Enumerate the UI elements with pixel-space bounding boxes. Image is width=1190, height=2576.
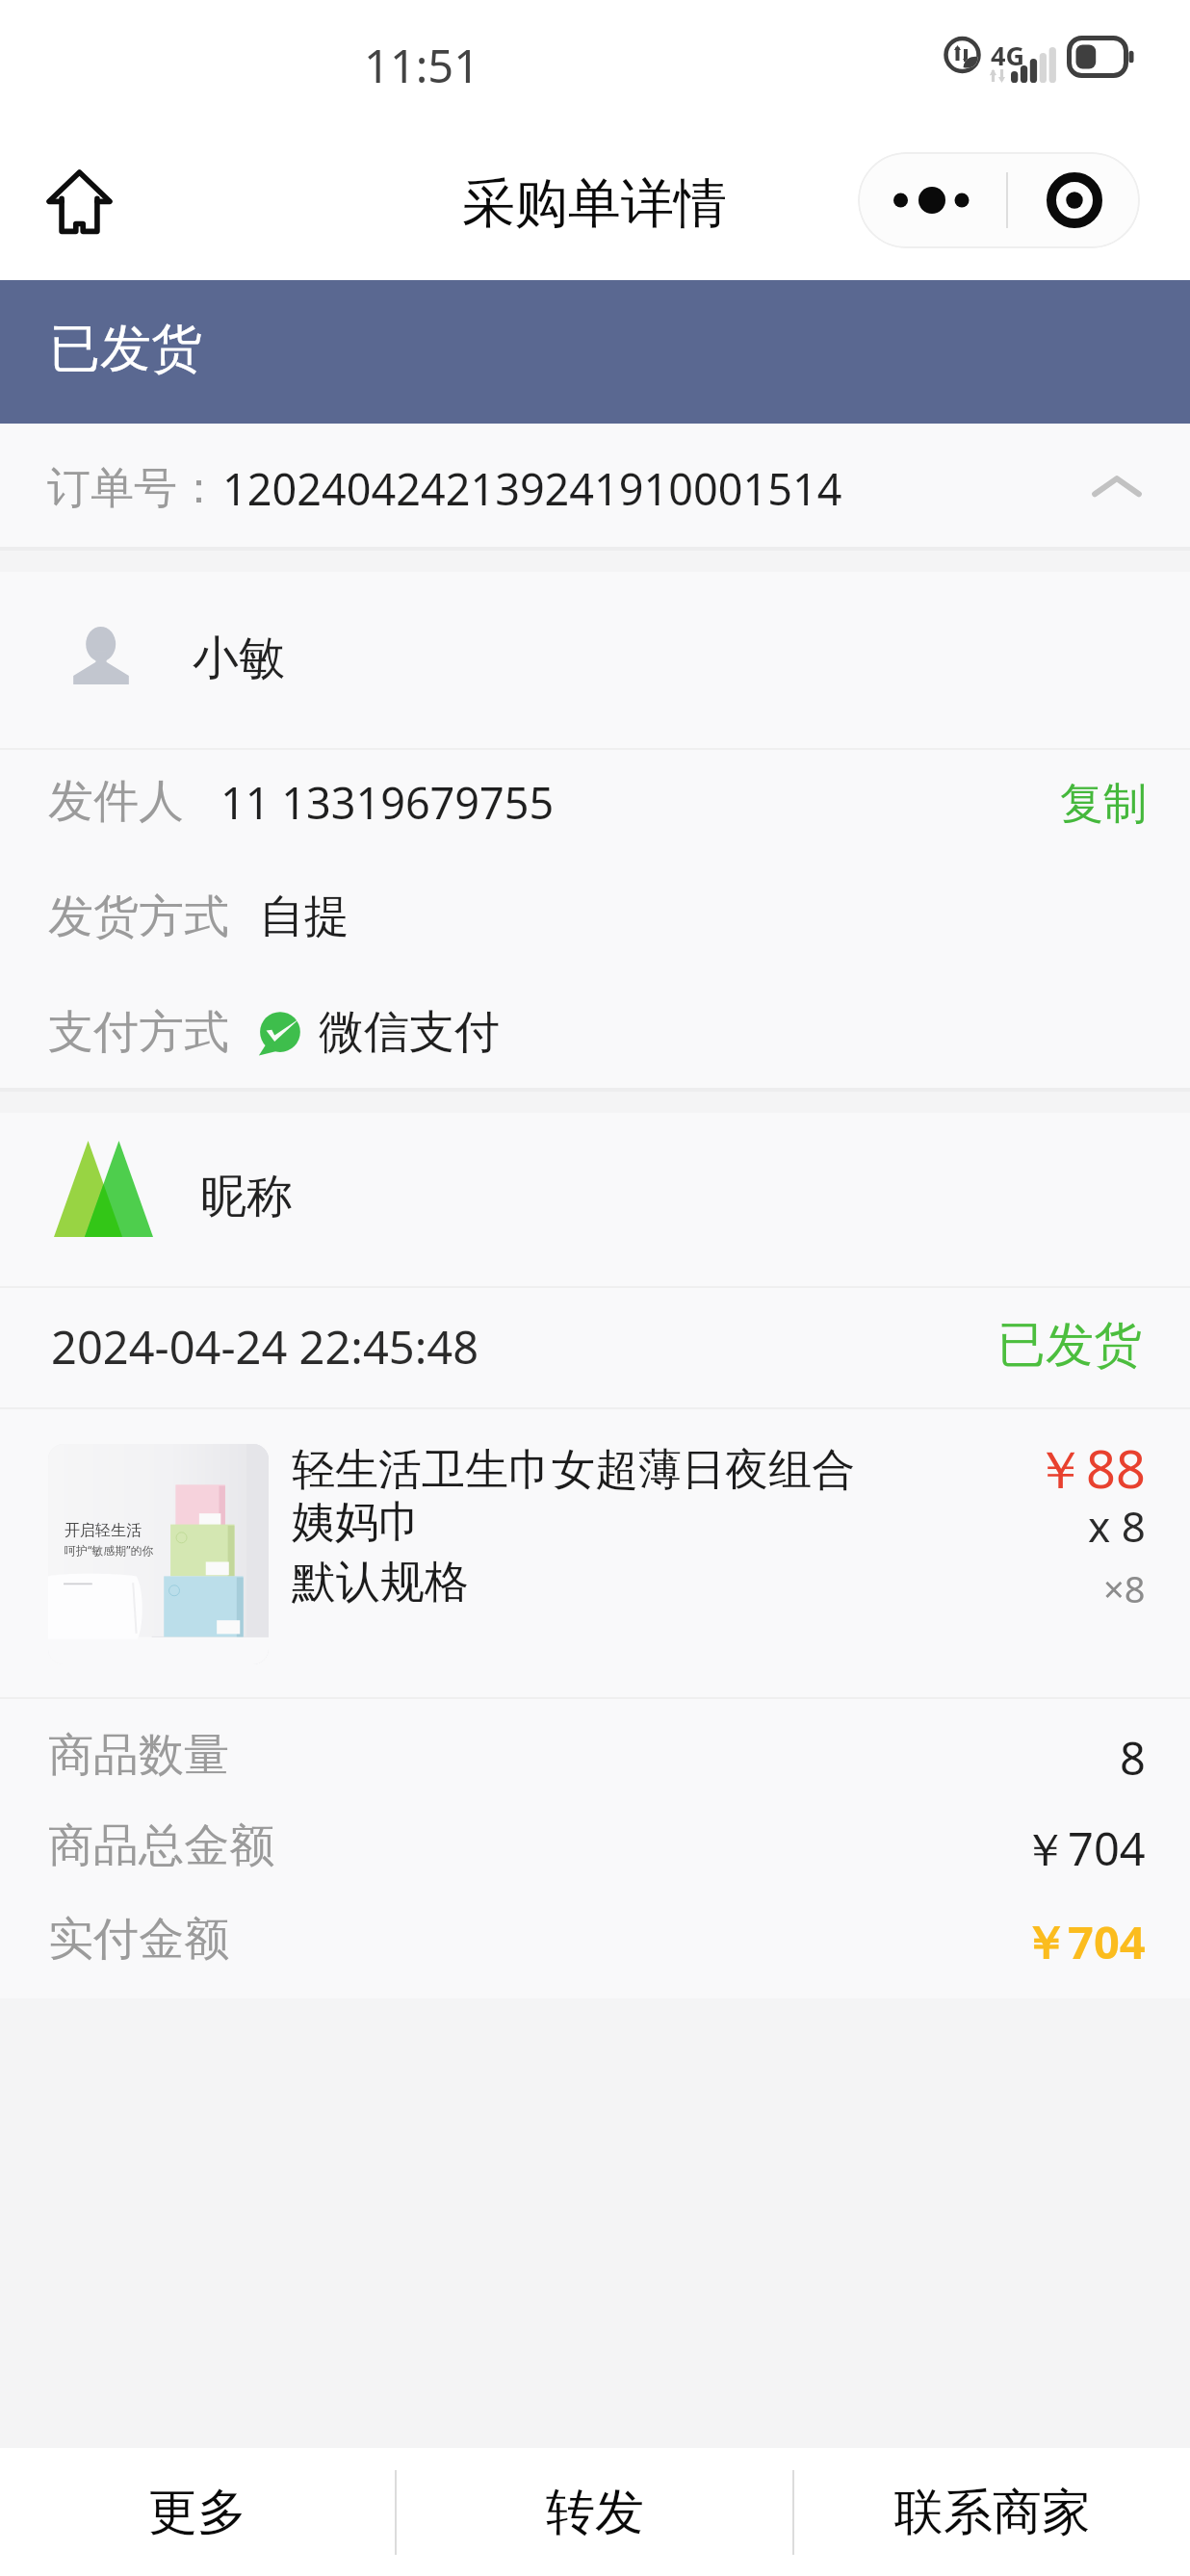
staticText: 昵称 bbox=[200, 1168, 293, 1225]
button[interactable] bbox=[0, 861, 1190, 974]
staticText: 商品总金额 bbox=[48, 1817, 274, 1874]
staticText: 订单号： bbox=[47, 461, 220, 516]
button[interactable]: 联系商家 bbox=[794, 2448, 1190, 2576]
staticText: 默认规格 bbox=[292, 1555, 469, 1610]
button[interactable]: 商品数量 bbox=[0, 1713, 1190, 1804]
staticText: 自提 bbox=[259, 889, 349, 945]
staticText: 发货方式 bbox=[48, 889, 229, 945]
staticText: 支付方式 bbox=[48, 1004, 229, 1061]
staticText: 4G bbox=[991, 38, 1024, 73]
staticText: 已发货 bbox=[49, 317, 202, 381]
staticText: ×8 bbox=[1103, 1563, 1146, 1613]
staticText: 2024-04-24 22:45:48 bbox=[51, 1316, 479, 1378]
button[interactable]: 更多 bbox=[0, 2448, 395, 2576]
staticText: 实付金额 bbox=[48, 1911, 229, 1968]
button[interactable] bbox=[0, 976, 1190, 1088]
staticText: 微信支付 bbox=[319, 1004, 500, 1061]
button[interactable]: Close mini program bbox=[1008, 152, 1140, 248]
button[interactable]: 商品总金额 bbox=[0, 1804, 1190, 1894]
staticText: 11:51 bbox=[364, 35, 480, 96]
staticText: 采购单详情 bbox=[462, 170, 727, 237]
button[interactable] bbox=[0, 750, 1190, 851]
staticText: 转发 bbox=[546, 2482, 644, 2543]
staticText: ￥704 bbox=[1022, 1911, 1146, 1972]
button[interactable]: 实付金额 bbox=[0, 1897, 1190, 1988]
staticText: 商品数量 bbox=[48, 1727, 229, 1784]
staticText: ￥88 bbox=[1034, 1432, 1146, 1504]
button[interactable]: 开启轻生活 bbox=[0, 1409, 1190, 1697]
staticText: 更多 bbox=[148, 2482, 246, 2543]
button[interactable]: More options bbox=[858, 152, 1006, 248]
staticText: 复制 bbox=[1060, 777, 1147, 832]
button[interactable]: 小敏 bbox=[0, 572, 1190, 748]
staticText: 已发货 bbox=[997, 1315, 1142, 1376]
staticText: ￥704 bbox=[1022, 1817, 1146, 1879]
staticText: 发件人 bbox=[48, 773, 184, 830]
staticText: 开启轻生活 bbox=[65, 1521, 142, 1540]
staticText: 小敏 bbox=[193, 630, 285, 687]
staticText: 8 bbox=[1120, 1727, 1146, 1789]
staticText: x 8 bbox=[1088, 1497, 1146, 1555]
button[interactable]: Home bbox=[21, 143, 137, 259]
staticText: 1202404242139241910001514 bbox=[222, 459, 842, 518]
button[interactable]: 昵称 bbox=[0, 1113, 1190, 1286]
button[interactable]: 订单号： bbox=[0, 424, 1190, 547]
staticText: 联系商家 bbox=[894, 2482, 1091, 2543]
staticText: 呵护“敏感期”的你 bbox=[65, 1542, 154, 1558]
button[interactable]: 转发 bbox=[397, 2448, 792, 2576]
staticText: 11 13319679755 bbox=[220, 773, 555, 832]
staticText: 轻生活卫生巾女超薄日夜组合姨妈巾 bbox=[292, 1443, 865, 1549]
button[interactable]: 复制 bbox=[1060, 777, 1147, 832]
